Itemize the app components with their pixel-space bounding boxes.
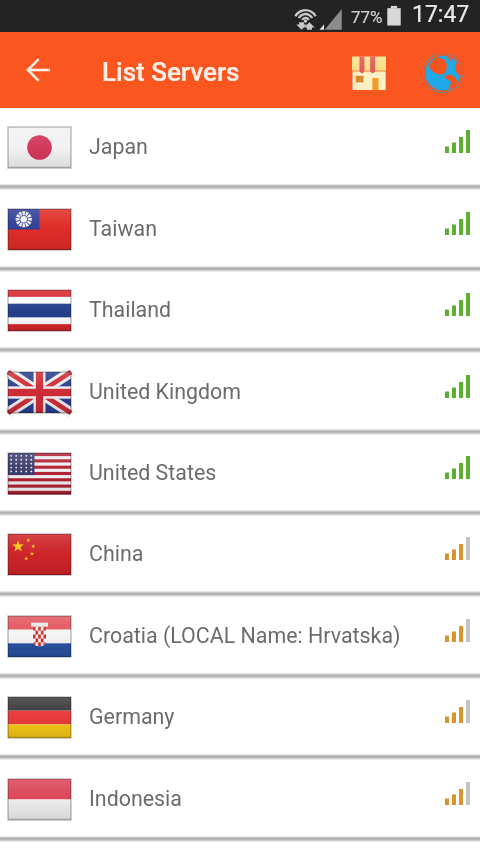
staticText: Indonesia: [89, 786, 182, 811]
staticText: Taiwan: [89, 216, 157, 241]
staticText: United States: [89, 460, 217, 485]
button[interactable]: Thailand: [0, 272, 480, 353]
button[interactable]: Croatia (LOCAL Name: Hrvatska): [0, 597, 480, 679]
staticText: Japan: [89, 134, 148, 159]
button[interactable]: China: [0, 516, 480, 597]
button[interactable]: Japan: [0, 109, 480, 190]
staticText: 17:47: [412, 1, 470, 28]
button[interactable]: Germany: [0, 679, 480, 760]
staticText: Germany: [89, 704, 175, 729]
staticText: Thailand: [89, 297, 172, 322]
button[interactable]: Globe: [420, 50, 466, 96]
button[interactable]: Back: [14, 46, 62, 94]
button[interactable]: Taiwan: [0, 190, 480, 272]
button[interactable]: Indonesia: [0, 760, 480, 842]
staticText: United Kingdom: [89, 379, 242, 404]
staticText: China: [89, 541, 144, 566]
staticText: List Servers: [102, 57, 240, 87]
button[interactable]: United Kingdom: [0, 353, 480, 435]
button[interactable]: Store: [346, 50, 392, 96]
staticText: Croatia (LOCAL Name: Hrvatska): [89, 623, 401, 648]
button[interactable]: United States: [0, 435, 480, 516]
staticText: 77%: [351, 7, 383, 27]
